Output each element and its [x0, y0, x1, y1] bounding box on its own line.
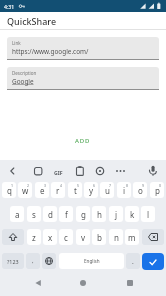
- button[interactable]: [146, 164, 160, 178]
- button[interactable]: [113, 164, 127, 178]
- button[interactable]: s: [27, 206, 41, 222]
- staticText: j: [115, 209, 118, 220]
- staticText: s: [32, 209, 36, 220]
- button[interactable]: [142, 253, 164, 270]
- button[interactable]: [93, 164, 107, 178]
- button[interactable]: y: [84, 182, 98, 198]
- button[interactable]: g: [76, 206, 90, 222]
- button[interactable]: v: [76, 229, 90, 245]
- button[interactable]: z: [27, 229, 41, 245]
- button[interactable]: u: [100, 182, 114, 198]
- staticText: t: [74, 185, 77, 196]
- button[interactable]: n: [109, 229, 123, 245]
- staticText: b: [97, 232, 102, 243]
- staticText: 9: [142, 183, 145, 188]
- staticText: v: [81, 232, 86, 243]
- staticText: 4:31: [4, 3, 15, 10]
- staticText: h: [97, 209, 102, 220]
- button[interactable]: .: [126, 253, 140, 269]
- staticText: w: [22, 185, 29, 196]
- button[interactable]: t: [68, 182, 82, 198]
- staticText: p: [155, 185, 160, 196]
- button[interactable]: p: [150, 182, 164, 198]
- button[interactable]: [56, 270, 111, 296]
- button[interactable]: h: [92, 206, 106, 222]
- staticText: English: [84, 258, 100, 264]
- button[interactable]: l: [141, 206, 155, 222]
- staticText: o: [138, 185, 143, 196]
- button[interactable]: k: [125, 206, 139, 222]
- button[interactable]: x: [43, 229, 57, 245]
- staticText: 6: [93, 183, 96, 188]
- staticText: 5: [77, 183, 80, 188]
- staticText: y: [89, 185, 94, 196]
- staticText: a: [15, 209, 20, 220]
- staticText: 8: [126, 183, 129, 188]
- staticText: 4: [60, 183, 63, 188]
- staticText: 2: [27, 183, 30, 188]
- staticText: 0: [159, 183, 162, 188]
- button[interactable]: o: [133, 182, 147, 198]
- staticText: .: [132, 257, 134, 266]
- button[interactable]: [2, 229, 24, 245]
- button[interactable]: b: [92, 229, 106, 245]
- staticText: https://www.google.com/: [12, 47, 89, 56]
- button[interactable]: ,: [26, 253, 40, 269]
- button[interactable]: [31, 164, 45, 178]
- staticText: GIF: [54, 169, 63, 176]
- button[interactable]: f: [59, 206, 73, 222]
- staticText: e: [40, 185, 45, 196]
- button[interactable]: c: [59, 229, 73, 245]
- button[interactable]: a: [10, 206, 24, 222]
- staticText: q: [7, 185, 12, 196]
- staticText: f: [65, 209, 68, 220]
- staticText: Link: [12, 40, 21, 46]
- button[interactable]: [111, 270, 166, 296]
- button[interactable]: r: [51, 182, 65, 198]
- button[interactable]: English: [59, 253, 124, 269]
- button[interactable]: Description: [7, 67, 159, 90]
- staticText: QuickShare: [7, 15, 57, 27]
- button[interactable]: [0, 270, 56, 296]
- button[interactable]: e: [35, 182, 49, 198]
- button[interactable]: QuickShare: [0, 12, 166, 30]
- button[interactable]: q: [2, 182, 16, 198]
- staticText: i: [123, 185, 126, 196]
- button[interactable]: i: [117, 182, 131, 198]
- staticText: u: [105, 185, 110, 196]
- staticText: k: [130, 209, 135, 220]
- staticText: Google: [12, 77, 34, 86]
- button[interactable]: [5, 164, 19, 178]
- staticText: r: [56, 185, 60, 196]
- button[interactable]: Link: [7, 37, 159, 60]
- staticText: m: [128, 232, 136, 243]
- staticText: 7: [109, 183, 112, 188]
- button[interactable]: ?123: [2, 253, 24, 269]
- button[interactable]: [142, 229, 164, 245]
- staticText: g: [81, 209, 86, 220]
- staticText: ?123: [7, 258, 19, 265]
- staticText: ADD: [75, 137, 91, 145]
- staticText: c: [64, 232, 68, 243]
- staticText: z: [32, 232, 36, 243]
- button[interactable]: m: [125, 229, 139, 245]
- staticText: 1: [11, 183, 14, 188]
- button[interactable]: [73, 164, 87, 178]
- staticText: l: [147, 209, 150, 220]
- staticText: n: [114, 232, 119, 243]
- staticText: Description: [12, 70, 37, 76]
- staticText: ,: [32, 257, 34, 265]
- button[interactable]: d: [43, 206, 57, 222]
- button[interactable]: j: [109, 206, 123, 222]
- button[interactable]: [51, 164, 65, 178]
- staticText: d: [48, 209, 53, 220]
- button[interactable]: w: [18, 182, 32, 198]
- staticText: x: [48, 232, 53, 243]
- button[interactable]: ADD: [65, 133, 101, 148]
- staticText: 3: [44, 183, 47, 188]
- button[interactable]: [42, 253, 56, 269]
